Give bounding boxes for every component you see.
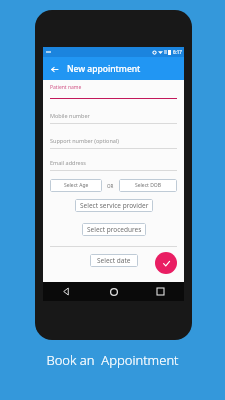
staticText: New appointment: [67, 63, 141, 75]
staticText: Select date: [97, 256, 131, 265]
button[interactable]: Select date: [90, 254, 138, 267]
button[interactable]: Support number (optional): [50, 137, 177, 149]
button[interactable]: Patient name: [50, 84, 177, 99]
button[interactable]: Confirm appointment: [155, 252, 177, 274]
button[interactable]: Select DOB: [119, 179, 177, 192]
staticText: Select service provider: [80, 201, 149, 210]
staticText: Select Age: [64, 182, 89, 189]
button[interactable]: Email address: [50, 159, 177, 171]
staticText: Support number (optional): [50, 137, 119, 144]
button[interactable]: Home: [90, 282, 137, 301]
button[interactable]: Mobile number: [50, 112, 177, 124]
button[interactable]: Select Age: [50, 179, 102, 192]
staticText: Select DOB: [135, 182, 161, 189]
staticText: Select procedures: [87, 225, 142, 234]
staticText: OR: [107, 183, 114, 189]
button[interactable]: Recent apps: [137, 282, 184, 301]
button[interactable]: Select procedures: [82, 223, 146, 236]
staticText: Patient name: [50, 84, 82, 91]
button[interactable]: Back: [43, 282, 90, 301]
staticText: 6:17: [173, 49, 182, 55]
button[interactable]: Select service provider: [75, 199, 153, 212]
staticText: Book an Appointment: [0, 351, 225, 369]
button[interactable]: Back: [48, 63, 60, 75]
staticText: Email address: [50, 159, 86, 166]
staticText: Mobile number: [50, 112, 90, 119]
